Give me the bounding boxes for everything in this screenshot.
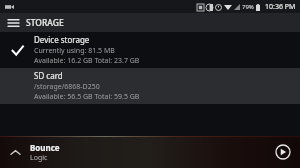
staticText: 10:36 PM bbox=[265, 2, 296, 12]
staticText: Device storage bbox=[34, 34, 90, 45]
staticText: 79% bbox=[242, 3, 254, 11]
staticText: /storage/6868-D250 bbox=[34, 82, 100, 92]
staticText: Logic bbox=[30, 153, 48, 163]
button[interactable]: Device storage bbox=[0, 32, 300, 68]
staticText: Currently using: 81.5 MB bbox=[34, 46, 115, 56]
staticText: Available: 16.2 GB Total: 23.7 GB bbox=[34, 56, 140, 66]
staticText: SD card bbox=[34, 70, 63, 81]
staticText: Available: 56.5 GB Total: 59.5 GB bbox=[34, 92, 140, 102]
button[interactable]: Expand player bbox=[6, 143, 24, 161]
button[interactable]: Open navigation menu bbox=[0, 13, 26, 32]
staticText: STORAGE bbox=[26, 17, 64, 29]
button[interactable]: Play bbox=[272, 141, 294, 163]
button[interactable]: SD card bbox=[0, 68, 300, 104]
button[interactable]: Expand player bbox=[0, 136, 300, 168]
staticText: Bounce bbox=[30, 142, 60, 153]
